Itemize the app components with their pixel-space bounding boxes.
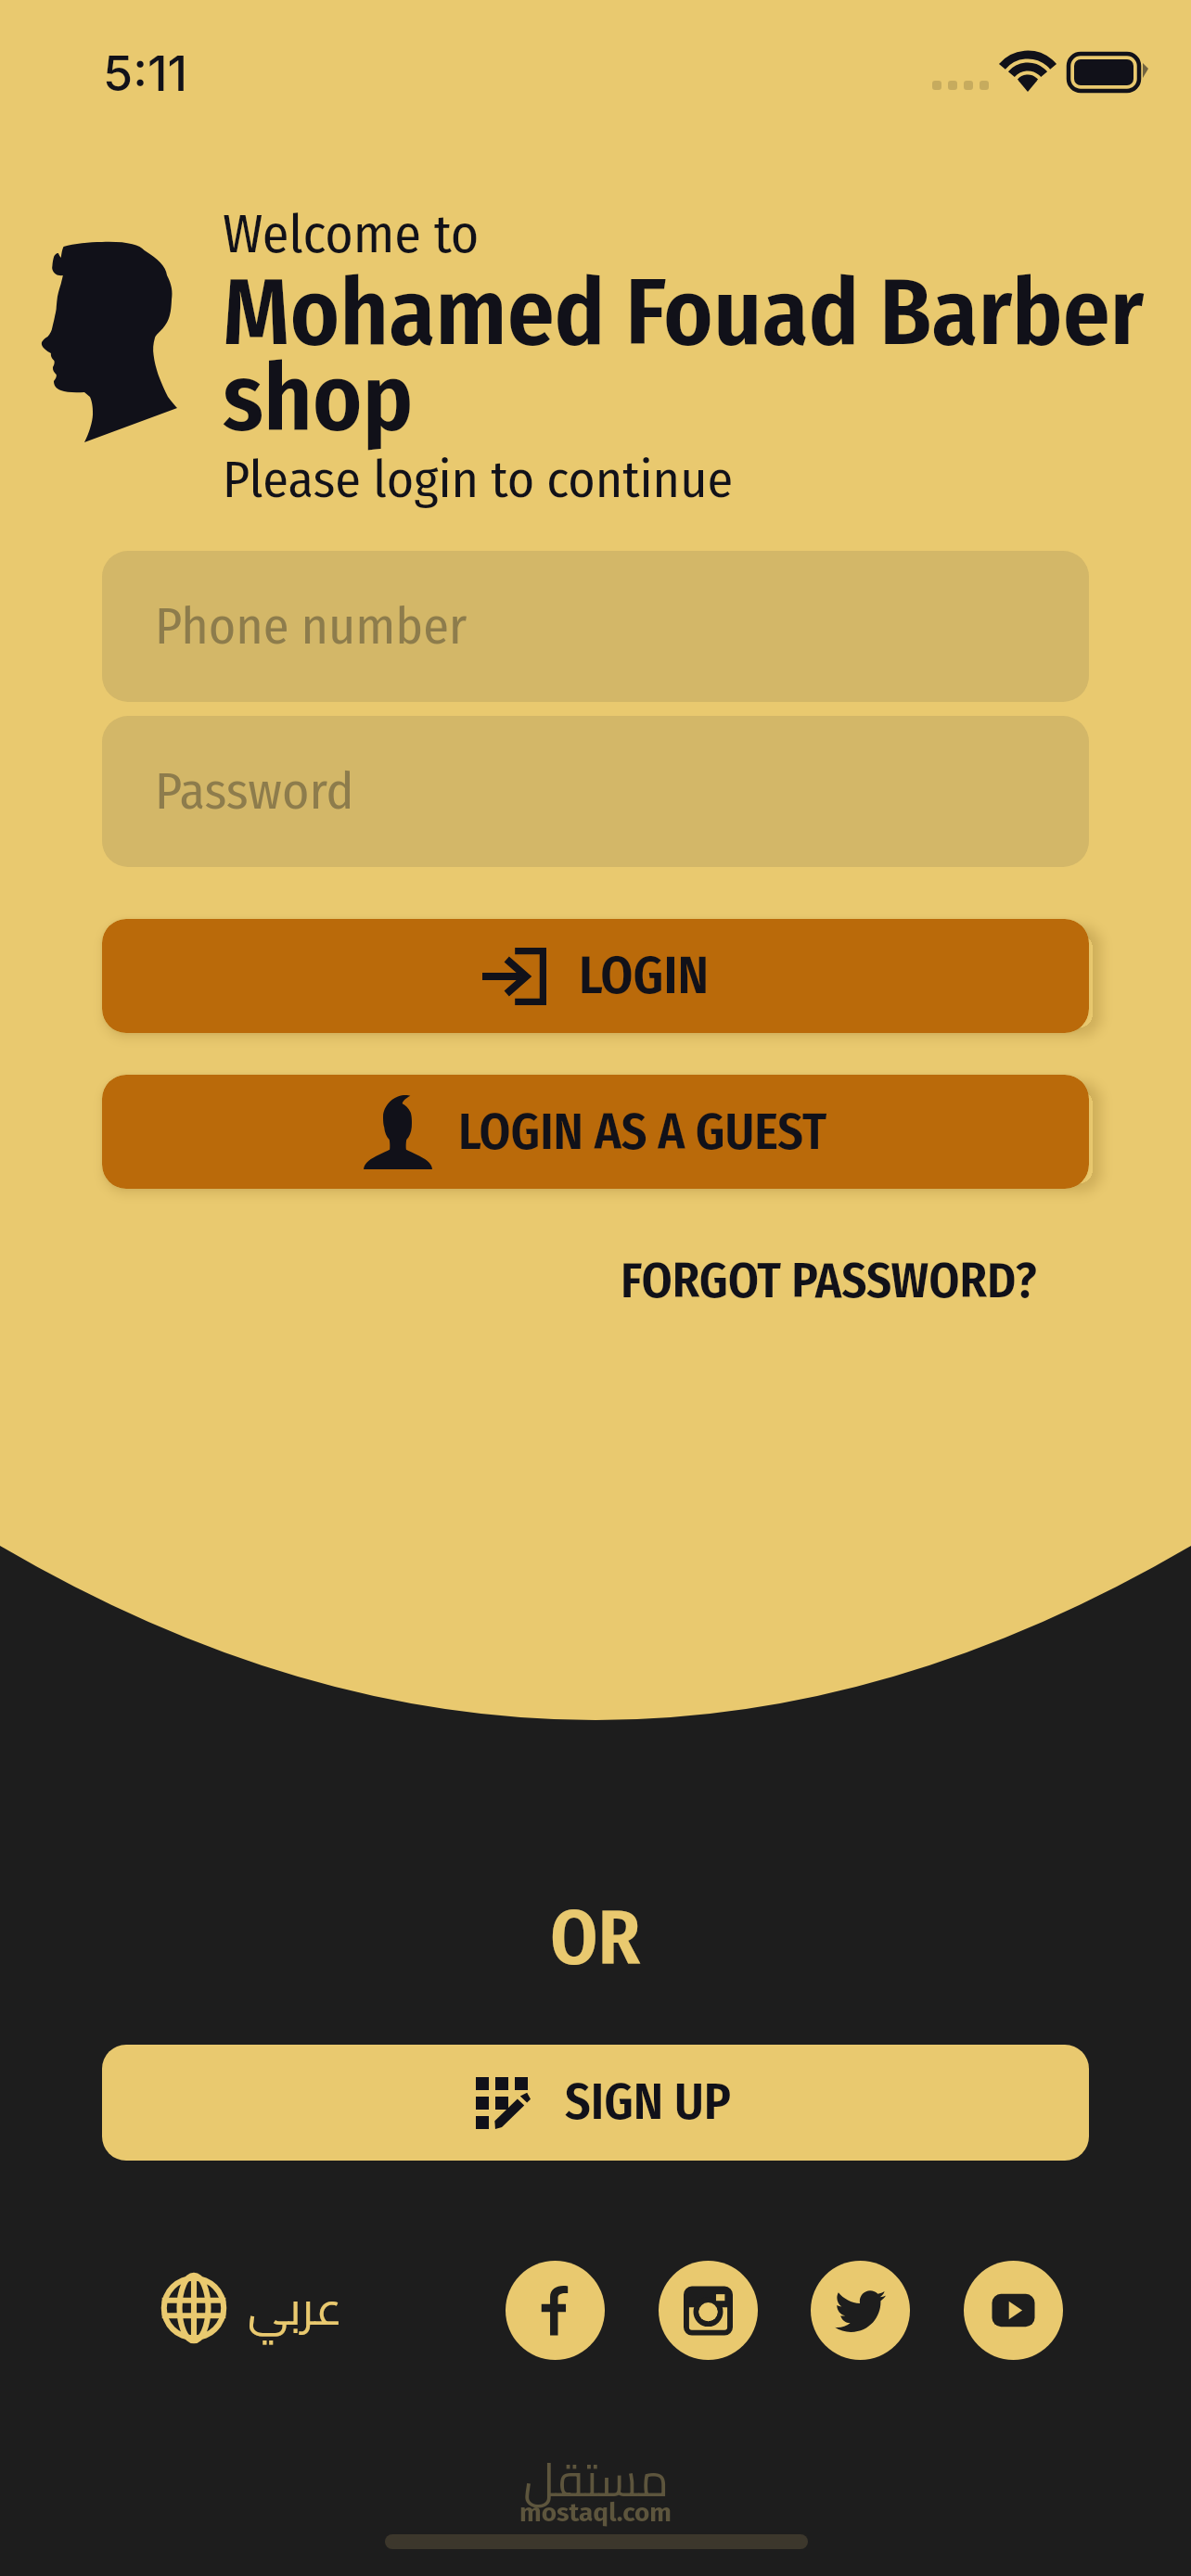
button[interactable]: SIGN UP xyxy=(102,2045,1089,2161)
button[interactable]: LOGIN AS A GUEST xyxy=(102,1075,1089,1189)
button[interactable]: Phone number xyxy=(102,551,1089,702)
button[interactable]: عربي xyxy=(148,2253,355,2363)
button[interactable]: Facebook xyxy=(506,2261,605,2360)
staticText: عربي xyxy=(248,2264,343,2352)
staticText: Phone number xyxy=(155,595,467,657)
staticText: Password xyxy=(155,760,354,823)
staticText: Welcome to xyxy=(223,202,480,267)
button[interactable]: Password xyxy=(102,716,1089,867)
staticText: Mohamed Fouad Barber shop xyxy=(223,257,1187,454)
staticText: LOGIN xyxy=(579,945,710,1007)
staticText: مستقل xyxy=(523,2436,669,2523)
button[interactable]: LOGIN xyxy=(102,919,1089,1033)
button[interactable]: YouTube xyxy=(964,2261,1063,2360)
button[interactable]: Instagram xyxy=(659,2261,758,2360)
staticText: FORGOT PASSWORD? xyxy=(621,1251,1037,1310)
staticText: mostaql.com xyxy=(519,2497,672,2529)
staticText: Please login to continue xyxy=(223,449,734,511)
button[interactable]: Twitter xyxy=(811,2261,910,2360)
staticText: SIGN UP xyxy=(565,2072,731,2133)
staticText: LOGIN AS A GUEST xyxy=(458,1103,827,1163)
button[interactable]: FORGOT PASSWORD? xyxy=(580,1223,1078,1338)
staticText: 5:11 xyxy=(103,45,188,103)
staticText: OR xyxy=(550,1893,641,1983)
